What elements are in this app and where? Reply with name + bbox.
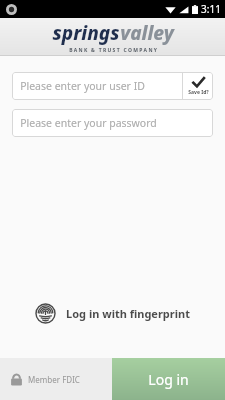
staticText: Log in <box>148 370 189 389</box>
staticText: B A N K & T R U S T C O M P A N Y <box>69 47 157 54</box>
staticText: springs <box>52 20 120 46</box>
staticText: Please enter your password <box>20 116 157 130</box>
staticText: 3:11 <box>201 2 221 16</box>
button[interactable]: Please enter your password <box>12 109 213 137</box>
staticText: Member FDIC <box>28 374 80 385</box>
button[interactable]: Please enter your user ID <box>12 72 182 100</box>
button[interactable]: Log in <box>112 358 225 400</box>
staticText: Please enter your user ID <box>20 79 145 93</box>
button[interactable]: Member FDIC <box>9 372 80 387</box>
button[interactable]: Log in with fingerprint <box>0 299 225 328</box>
staticText: Log in with fingerprint <box>66 306 190 321</box>
staticText: valley <box>120 20 174 46</box>
button[interactable]: Save Id <box>183 72 213 100</box>
staticText: Save Id? <box>188 89 209 96</box>
